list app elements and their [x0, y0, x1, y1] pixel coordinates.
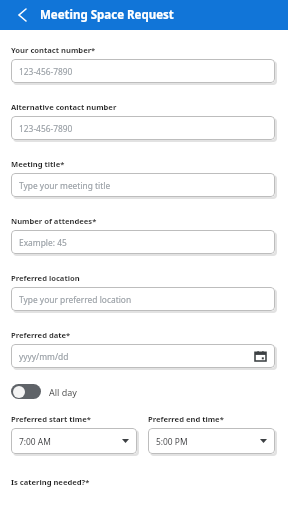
- staticText: Preferred end time*: [148, 414, 224, 424]
- staticText: yyyy/mm/dd: [19, 351, 255, 362]
- staticText: Alternative contact number: [11, 102, 117, 112]
- staticText: All day: [49, 386, 77, 398]
- staticText: Meeting Space Request: [40, 7, 174, 23]
- staticText: Meeting title*: [11, 159, 65, 169]
- staticText: 7:00 AM: [19, 436, 122, 447]
- staticText: Is catering needed?*: [11, 477, 90, 487]
- staticText: Preferred start time*: [11, 414, 91, 424]
- staticText: 123-456-7890: [19, 66, 73, 77]
- staticText: Your contact number*: [11, 45, 96, 55]
- staticText: Example: 45: [19, 237, 67, 248]
- button[interactable]: 123-456-7890: [11, 59, 275, 83]
- button[interactable]: All day toggle: [11, 384, 41, 399]
- button[interactable]: Back: [12, 5, 32, 25]
- staticText: Type your preferred location: [19, 294, 132, 305]
- button[interactable]: Type your preferred location: [11, 287, 275, 311]
- staticText: 5:00 PM: [156, 436, 260, 447]
- staticText: 123-456-7890: [19, 123, 73, 134]
- staticText: Type your meeting title: [19, 180, 111, 191]
- button[interactable]: 123-456-7890: [11, 116, 275, 140]
- button[interactable]: Example: 45: [11, 230, 275, 254]
- staticText: Preferred date*: [11, 330, 71, 340]
- button[interactable]: 7:00 AM: [11, 428, 137, 454]
- button[interactable]: Type your meeting title: [11, 173, 275, 197]
- button[interactable]: 5:00 PM: [148, 428, 275, 454]
- staticText: Preferred location: [11, 273, 80, 283]
- staticText: Number of attendees*: [11, 216, 97, 226]
- button[interactable]: yyyy/mm/dd: [11, 344, 275, 368]
- other: Pick date: [255, 351, 266, 361]
